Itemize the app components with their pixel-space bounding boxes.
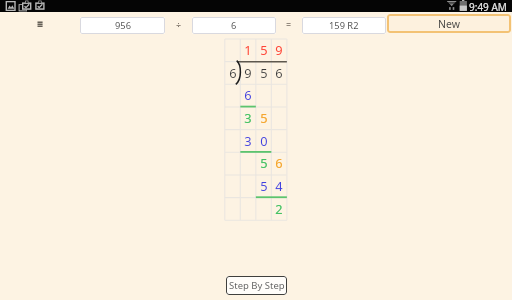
button[interactable]: 956 (80, 17, 165, 34)
staticText: 4 (275, 177, 283, 194)
button[interactable]: New (387, 14, 511, 33)
staticText: 3 (244, 109, 252, 126)
staticText: 5 (260, 109, 268, 126)
button[interactable]: Menu (30, 14, 50, 34)
staticText: 5 (260, 154, 268, 171)
staticText: 6 (231, 19, 237, 32)
staticText: 0 (260, 132, 268, 149)
staticText: ÷ (176, 18, 182, 30)
staticText: 5 (260, 177, 268, 194)
staticText: 5 (260, 64, 268, 81)
button[interactable]: 6 (192, 17, 276, 34)
button[interactable]: 159 R2 (302, 17, 386, 34)
staticText: 956 (115, 19, 131, 32)
staticText: 6 (275, 154, 283, 171)
staticText: 6 (244, 86, 252, 103)
staticText: 9:49 AM (469, 0, 507, 12)
staticText: 6 (275, 64, 283, 81)
staticText: 1 (244, 41, 252, 58)
staticText: 9 (275, 41, 283, 58)
button[interactable]: Step By Step (226, 276, 287, 295)
staticText: 5 (260, 41, 268, 58)
staticText: 159 R2 (329, 19, 359, 32)
staticText: Step By Step (229, 279, 285, 292)
staticText: 3 (244, 132, 252, 149)
staticText: 6 (229, 64, 237, 81)
staticText: 2 (275, 200, 283, 217)
staticText: = (286, 18, 292, 30)
staticText: 9 (244, 64, 252, 81)
staticText: New (438, 17, 460, 31)
